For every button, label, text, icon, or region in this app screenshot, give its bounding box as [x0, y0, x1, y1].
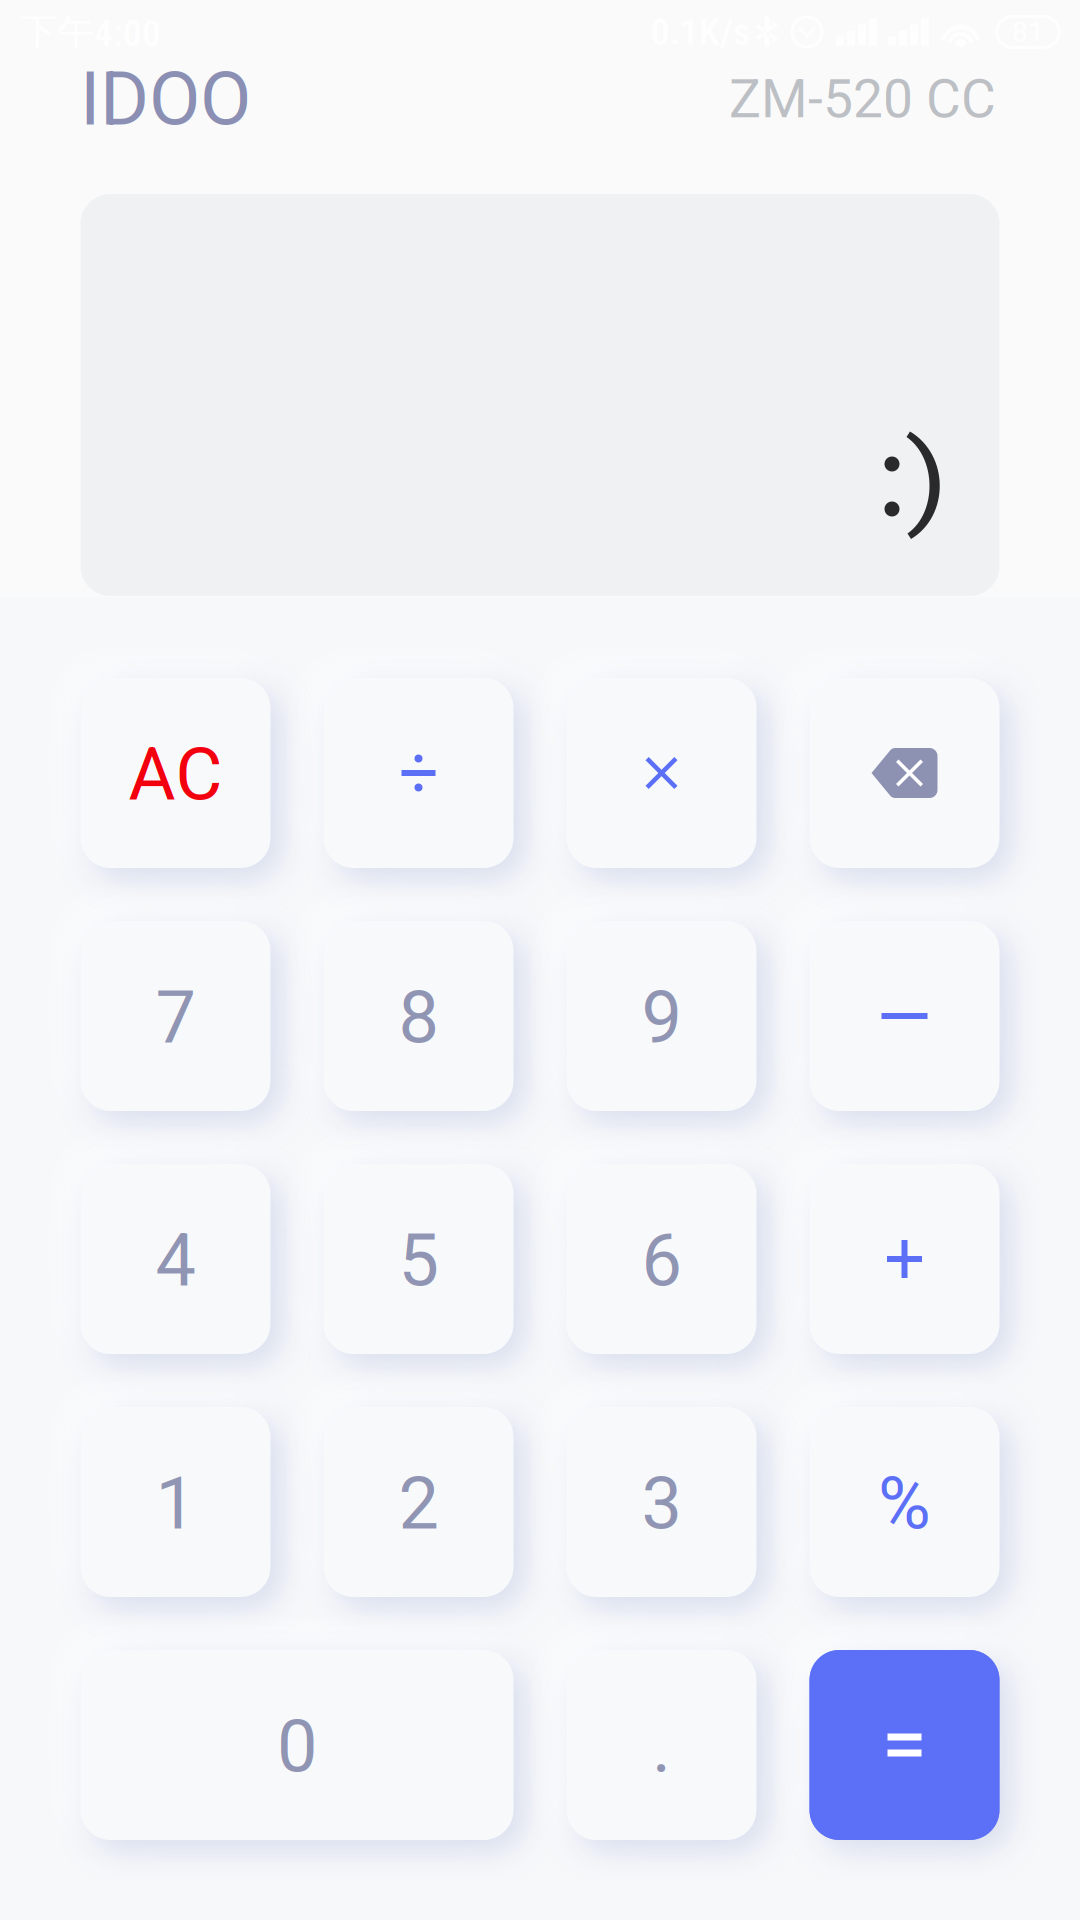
- button[interactable]: 0: [80, 1650, 513, 1840]
- button[interactable]: [566, 678, 756, 868]
- staticText: AC: [128, 733, 222, 817]
- staticText: 6: [641, 1219, 681, 1303]
- button[interactable]: 1: [80, 1407, 270, 1597]
- staticText: 2: [398, 1462, 438, 1546]
- button[interactable]: [809, 678, 999, 868]
- staticText: .: [652, 1705, 671, 1789]
- staticText: IDOO: [80, 55, 251, 143]
- button[interactable]: .: [566, 1650, 756, 1840]
- button[interactable]: [809, 921, 999, 1111]
- staticText: 3: [641, 1462, 681, 1546]
- button[interactable]: 3: [566, 1407, 756, 1597]
- button[interactable]: [809, 1164, 999, 1354]
- staticText: ZM-520 CC: [729, 68, 996, 130]
- button[interactable]: 7: [80, 921, 270, 1111]
- staticText: 8: [398, 976, 438, 1060]
- button[interactable]: [809, 1650, 999, 1840]
- button[interactable]: 6: [566, 1164, 756, 1354]
- button[interactable]: 4: [80, 1164, 270, 1354]
- button[interactable]: 8: [323, 921, 513, 1111]
- button[interactable]: 5: [323, 1164, 513, 1354]
- staticText: %: [878, 1462, 931, 1546]
- staticText: 5: [398, 1219, 438, 1303]
- staticText: 7: [155, 976, 195, 1060]
- button[interactable]: [323, 678, 513, 868]
- button[interactable]: 2: [323, 1407, 513, 1597]
- staticText: 4: [155, 1219, 195, 1303]
- button[interactable]: AC: [80, 678, 270, 868]
- staticText: 1: [155, 1462, 195, 1546]
- button[interactable]: 9: [566, 921, 756, 1111]
- staticText: 0: [277, 1705, 317, 1789]
- button[interactable]: %: [809, 1407, 999, 1597]
- staticText: 9: [641, 976, 681, 1060]
